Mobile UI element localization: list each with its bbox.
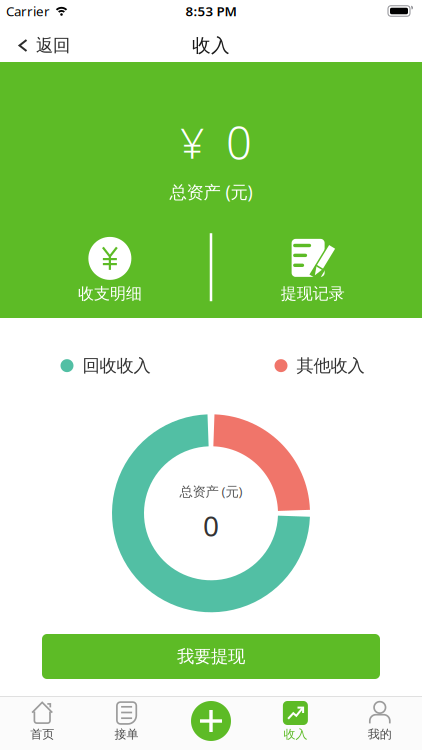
staticText: 收入 [283, 727, 307, 742]
staticText: 我的 [368, 727, 392, 742]
staticText: 接单 [115, 727, 139, 742]
staticText: 收入 [192, 34, 230, 57]
button[interactable]: 首页 [0, 697, 84, 742]
button[interactable]: 收支明细 [0, 237, 210, 304]
staticText: Carrier [6, 2, 50, 20]
button[interactable]: 我要提现 [42, 634, 380, 679]
button[interactable]: 收入 [253, 697, 338, 742]
button[interactable]: 接单 [84, 697, 169, 742]
staticText: 0 [203, 507, 219, 544]
staticText: 8:53 PM [185, 2, 236, 20]
staticText: 其他收入 [296, 355, 364, 376]
staticText: 我要提现 [177, 646, 245, 667]
button[interactable]: 我的 [338, 697, 422, 742]
staticText: 总资产 (元) [179, 482, 242, 500]
button[interactable]: 返回 [0, 25, 70, 62]
staticText: 返回 [36, 35, 70, 56]
staticText: 首页 [30, 727, 54, 742]
staticText: ¥ [180, 114, 204, 170]
button[interactable]: 发布 [169, 697, 253, 741]
staticText: 回收收入 [82, 355, 150, 376]
button[interactable]: 提现记录 [212, 237, 422, 304]
staticText: 总资产 (元) [169, 180, 252, 203]
staticText: 收支明细 [78, 284, 142, 304]
staticText: 提现记录 [281, 284, 345, 304]
staticText: 0 [226, 112, 252, 172]
